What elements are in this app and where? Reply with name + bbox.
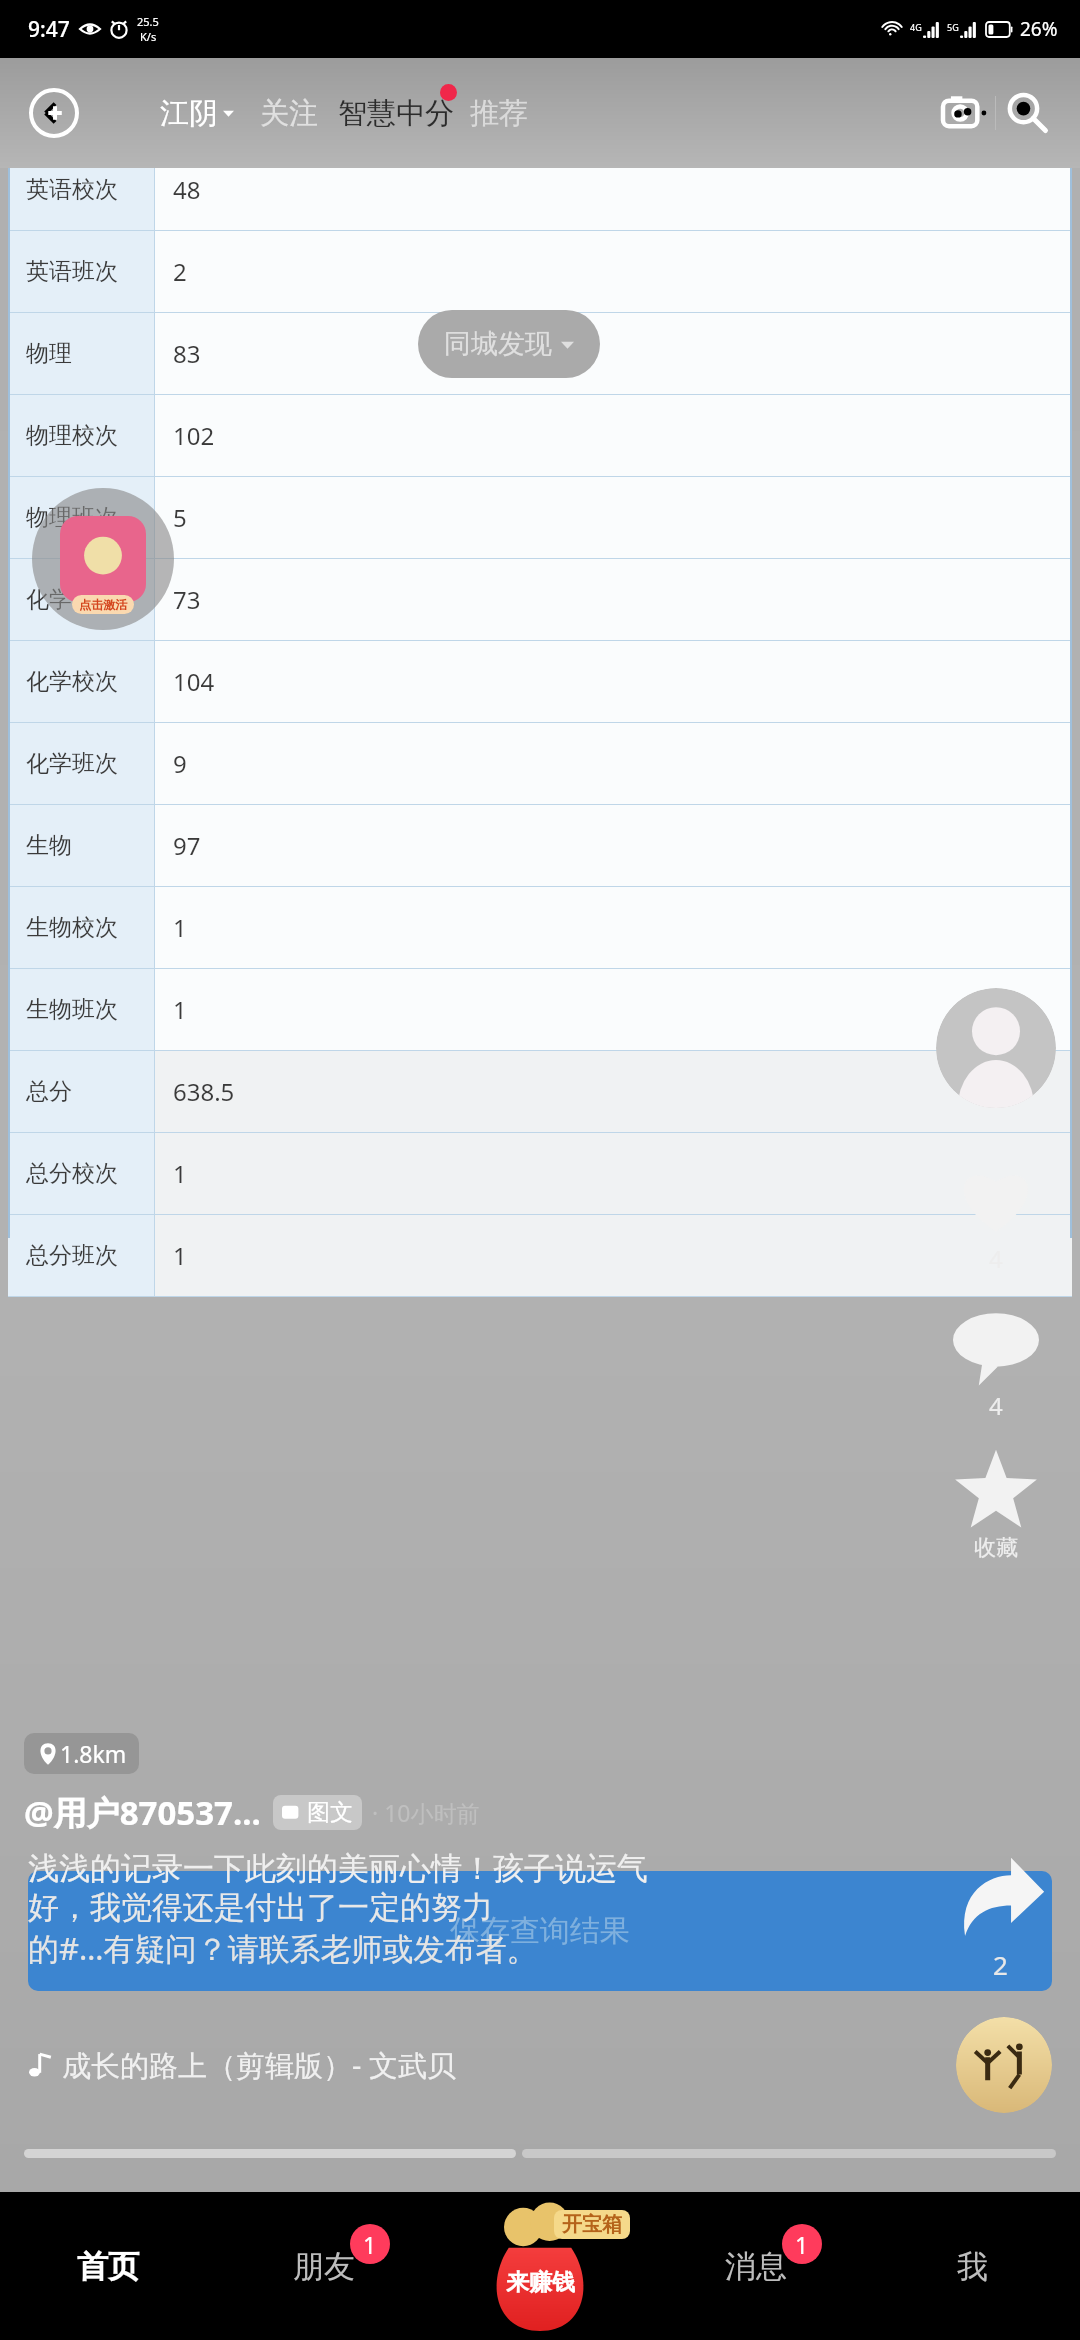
button[interactable]: Music cover <box>956 2017 1052 2113</box>
staticText: 638.5 <box>173 1075 235 1108</box>
button[interactable]: 物理校次 <box>8 395 1072 476</box>
button[interactable]: 英语班次 <box>8 231 1072 312</box>
staticText: 1 <box>363 2229 377 2260</box>
button[interactable]: 英语校次 <box>8 149 1072 230</box>
button[interactable]: Action <box>953 1303 1039 1422</box>
staticText: 97 <box>173 829 201 862</box>
staticText: 江阴 <box>160 95 218 132</box>
staticText: 4 <box>989 1389 1003 1422</box>
staticText: 英语班次 <box>26 257 118 286</box>
button[interactable]: Action <box>953 1156 1039 1275</box>
staticText: 73 <box>173 583 201 616</box>
button[interactable]: 总分校次 <box>8 1133 1072 1214</box>
button[interactable]: Author avatar <box>936 988 1056 1108</box>
staticText: 点击激活 <box>79 597 127 612</box>
button[interactable]: 总分 <box>8 1051 1072 1132</box>
button[interactable]: 生物班次 <box>8 969 1072 1050</box>
button[interactable]: 化学 <box>8 559 1072 640</box>
staticText: 104 <box>173 665 215 698</box>
staticText: 1 <box>173 993 187 1026</box>
staticText: 总分校次 <box>26 1159 118 1188</box>
staticText: 25.5 <box>137 14 159 29</box>
staticText: 48 <box>173 173 201 206</box>
staticText: 1 <box>795 2229 809 2260</box>
staticText: 浅浅的记录一下此刻的美丽心情！孩子说运气 <box>28 1849 648 1888</box>
button[interactable]: 物理班次 <box>8 477 1072 558</box>
button[interactable]: 同城发现 <box>418 310 600 378</box>
button[interactable]: 推荐 <box>470 95 528 132</box>
staticText: 消息 <box>725 2247 787 2286</box>
button[interactable]: Search <box>996 82 1058 144</box>
button[interactable]: Back <box>28 87 80 139</box>
button[interactable]: Share <box>954 1855 1046 1947</box>
staticText: 成长的路上（剪辑版）- 文武贝 <box>62 2045 456 2085</box>
button[interactable]: Camera <box>935 83 995 143</box>
button[interactable]: 生物校次 <box>8 887 1072 968</box>
staticText: 1.8km <box>60 1738 127 1769</box>
staticText: 总分 <box>26 1077 72 1106</box>
staticText: 我 <box>957 2247 988 2286</box>
button[interactable]: 江阴 <box>160 95 234 132</box>
button[interactable]: 化学班次 <box>8 723 1072 804</box>
staticText: 英语校次 <box>26 175 118 204</box>
staticText: @用户870537... <box>24 1790 261 1835</box>
staticText: 物理班次 <box>26 503 118 532</box>
button[interactable]: 朋友 <box>216 2192 432 2340</box>
button[interactable]: 智慧中分 <box>338 95 454 132</box>
staticText: 的#…有疑问？请联系老师或发布者。 <box>28 1927 538 1969</box>
staticText: 化学班次 <box>26 749 118 778</box>
staticText: 26% <box>1020 16 1058 42</box>
staticText: 总分班次 <box>26 1241 118 1270</box>
staticText: 来赚钱 <box>506 2268 575 2297</box>
staticText: 1 <box>173 911 187 944</box>
staticText: 9 <box>173 747 187 780</box>
button[interactable]: 生物 <box>8 805 1072 886</box>
staticText: 化学 <box>26 585 72 614</box>
staticText: 图文 <box>307 1798 353 1827</box>
staticText: 化学校次 <box>26 667 118 696</box>
staticText: 5 <box>173 501 187 534</box>
staticText: 生物 <box>26 831 72 860</box>
button[interactable]: 首页 <box>0 2192 216 2340</box>
button[interactable]: App shortcut <box>32 488 174 630</box>
staticText: 朋友 <box>293 2247 355 2286</box>
staticText: 2 <box>173 255 187 288</box>
staticText: 生物校次 <box>26 913 118 942</box>
staticText: 9:47 <box>28 15 70 44</box>
staticText: 好，我觉得还是付出了一定的努力 <box>28 1888 493 1927</box>
button[interactable]: 化学校次 <box>8 641 1072 722</box>
button[interactable]: 总分班次 <box>8 1215 1072 1296</box>
staticText: 开宝箱 <box>562 2212 622 2237</box>
staticText: 83 <box>173 337 201 370</box>
button[interactable]: 消息 <box>648 2192 864 2340</box>
staticText: 物理校次 <box>26 421 118 450</box>
staticText: 生物班次 <box>26 995 118 1024</box>
staticText: 102 <box>173 419 215 452</box>
staticText: 保存查询结果 <box>450 1912 630 1950</box>
staticText: 收藏 <box>974 1534 1018 1562</box>
staticText: 关注 <box>260 95 318 132</box>
staticText: 1 <box>173 1157 187 1190</box>
staticText: 4G <box>910 21 922 33</box>
button[interactable]: 我 <box>864 2192 1080 2340</box>
button[interactable]: 成长的路上（剪辑版）- 文武贝 <box>28 2045 956 2085</box>
button[interactable]: 物理 <box>8 313 1072 394</box>
button[interactable]: 1.8km <box>24 1733 139 1774</box>
staticText: 物理 <box>26 339 72 368</box>
staticText: 同城发现 <box>444 327 552 361</box>
staticText: 2 <box>993 1947 1008 1982</box>
button[interactable]: @用户870537... <box>24 1790 480 1835</box>
button[interactable]: 保存查询结果 <box>28 1871 1052 1991</box>
staticText: 首页 <box>77 2247 139 2286</box>
staticText: K/s <box>140 29 157 44</box>
staticText: 5G <box>947 21 959 33</box>
button[interactable]: Favorite <box>953 1448 1039 1562</box>
staticText: · 10小时前 <box>372 1797 480 1828</box>
staticText: 1 <box>173 1239 187 1272</box>
button[interactable]: 关注 <box>260 95 318 132</box>
button[interactable]: 来赚钱 <box>432 2192 648 2340</box>
staticText: 推荐 <box>470 95 528 132</box>
staticText: 智慧中分 <box>338 95 454 132</box>
